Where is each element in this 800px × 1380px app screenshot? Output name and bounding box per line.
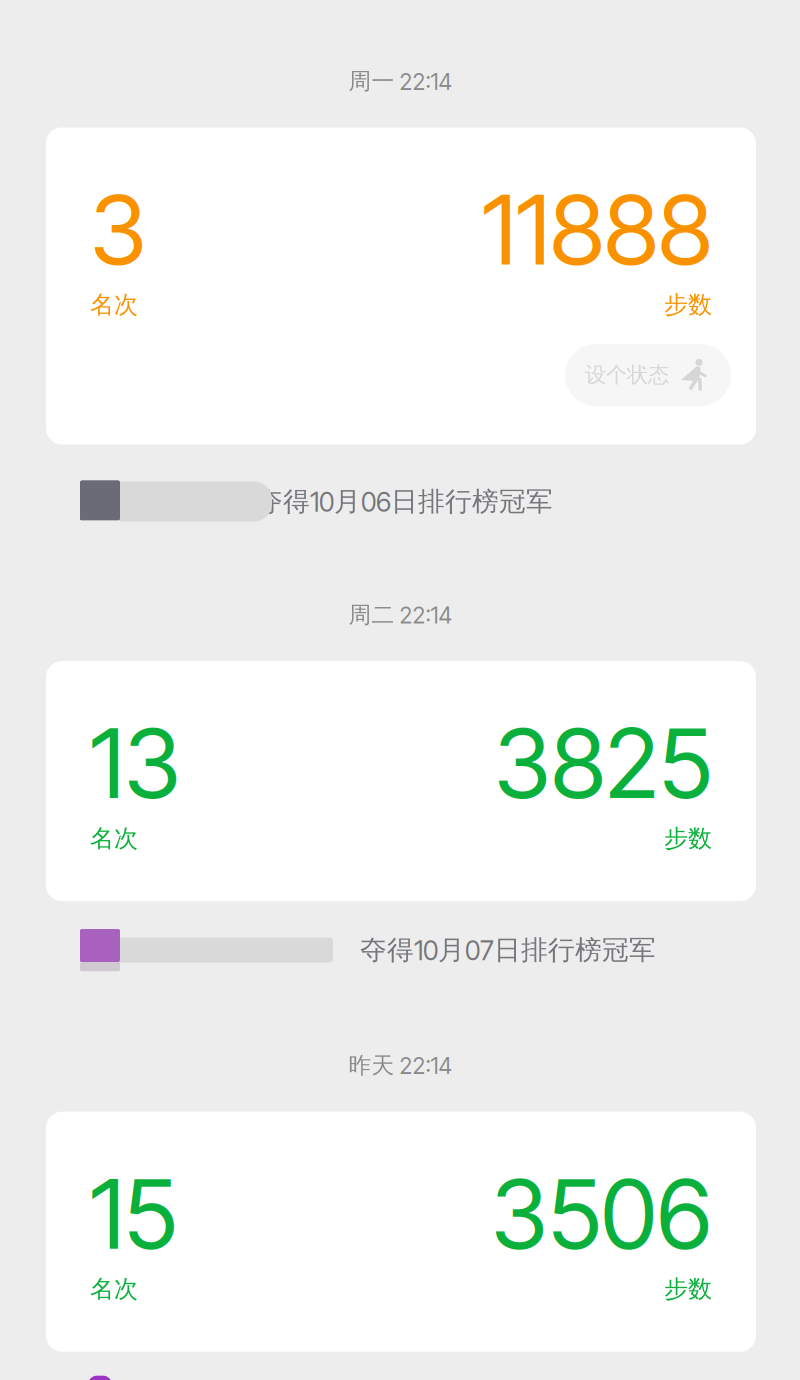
- staticText: 步数: [664, 290, 712, 320]
- staticText: 步数: [664, 1274, 712, 1304]
- staticText: 夺得10月06日排行榜冠军: [256, 485, 553, 518]
- staticText: 夺得10月07日排行榜冠军: [360, 933, 656, 967]
- staticText: 11888: [482, 172, 712, 288]
- button[interactable]: 设个状态: [565, 344, 731, 406]
- staticText: 周二 22:14: [348, 601, 451, 629]
- staticText: 13: [90, 705, 181, 821]
- staticText: 昨天 22:14: [348, 1051, 451, 1080]
- staticText: 名次: [90, 1274, 138, 1304]
- staticText: 名次: [90, 290, 138, 320]
- staticText: 3825: [494, 705, 712, 821]
- staticText: 15: [90, 1156, 177, 1272]
- staticText: 名次: [90, 823, 138, 853]
- button[interactable]: 15: [46, 1112, 756, 1304]
- staticText: 3: [90, 172, 147, 288]
- button[interactable]: 13: [46, 661, 756, 853]
- staticText: 周一 22:14: [348, 67, 451, 96]
- button[interactable]: 3: [46, 128, 756, 320]
- staticText: 步数: [664, 823, 712, 853]
- staticText: 设个状态: [585, 361, 669, 388]
- staticText: 3506: [491, 1156, 712, 1272]
